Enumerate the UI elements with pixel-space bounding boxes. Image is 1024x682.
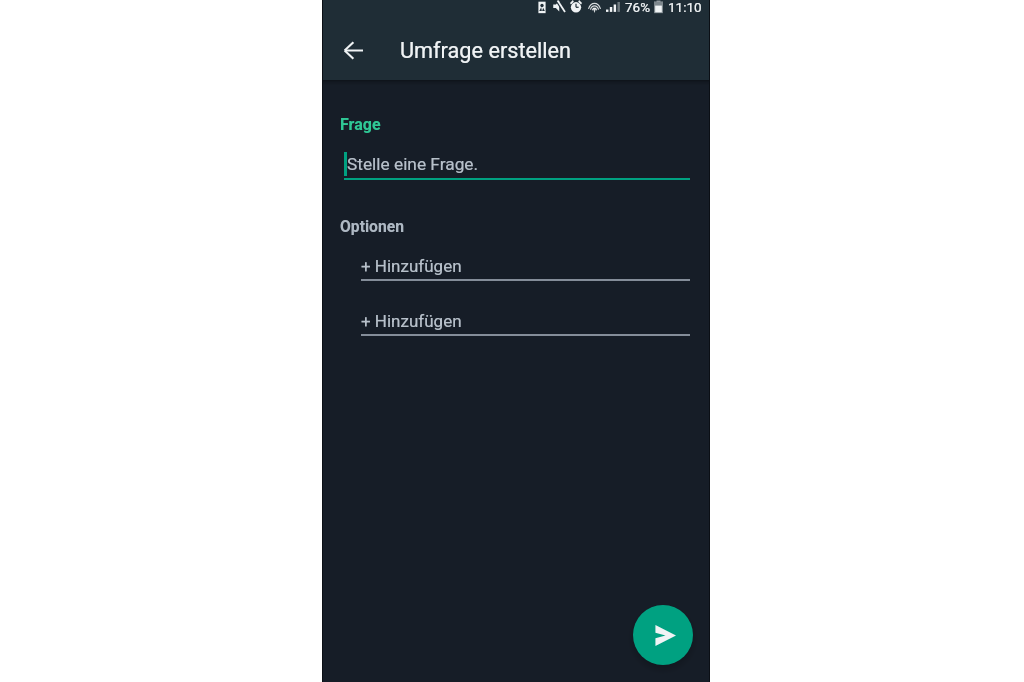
button[interactable]: + Hinzufügen xyxy=(361,256,690,281)
staticText: 76% xyxy=(625,0,651,15)
button[interactable]: Send xyxy=(633,605,693,665)
button[interactable]: Back xyxy=(334,30,374,70)
staticText: + Hinzufügen xyxy=(361,311,462,331)
staticText: 11:10 xyxy=(668,0,702,15)
button[interactable]: Stelle eine Frage. xyxy=(344,152,690,180)
staticText: Optionen xyxy=(340,217,405,235)
staticText: Frage xyxy=(340,115,381,134)
button[interactable]: + Hinzufügen xyxy=(361,311,690,336)
staticText: Stelle eine Frage. xyxy=(347,154,479,174)
staticText: + Hinzufügen xyxy=(361,256,462,276)
staticText: Umfrage erstellen xyxy=(400,38,572,63)
